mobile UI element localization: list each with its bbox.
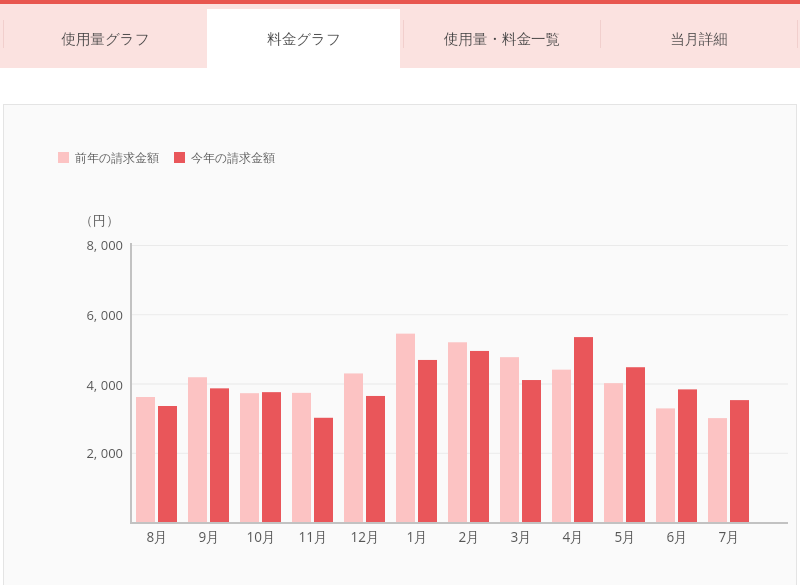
- staticText: 7月: [706, 528, 752, 546]
- staticText: 4月: [550, 528, 596, 546]
- staticText: 8, 000: [67, 236, 123, 254]
- button[interactable]: 料金グラフ: [207, 9, 400, 68]
- staticText: 6月: [654, 528, 700, 546]
- button[interactable]: 使用量グラフ: [4, 9, 207, 68]
- staticText: 使用量グラフ: [61, 30, 150, 48]
- staticText: 使用量・料金一覧: [444, 30, 560, 48]
- staticText: 2月: [446, 528, 492, 546]
- staticText: 3月: [498, 528, 544, 546]
- staticText: 10月: [238, 528, 284, 546]
- staticText: 1月: [394, 528, 440, 546]
- button[interactable]: 当月詳細: [601, 9, 797, 68]
- staticText: 11月: [290, 528, 336, 546]
- staticText: 2, 000: [67, 444, 123, 462]
- staticText: 料金グラフ: [267, 30, 341, 48]
- staticText: 9月: [186, 528, 232, 546]
- staticText: 8月: [134, 528, 180, 546]
- button[interactable]: 使用量・料金一覧: [404, 9, 600, 68]
- staticText: 6, 000: [67, 306, 123, 324]
- staticText: 4, 000: [67, 376, 123, 394]
- staticText: 5月: [602, 528, 648, 546]
- staticText: 12月: [342, 528, 388, 546]
- staticText: 当月詳細: [670, 30, 728, 48]
- staticText: 前年の請求金額: [75, 150, 160, 165]
- staticText: （円）: [80, 212, 119, 228]
- staticText: 今年の請求金額: [191, 150, 276, 165]
